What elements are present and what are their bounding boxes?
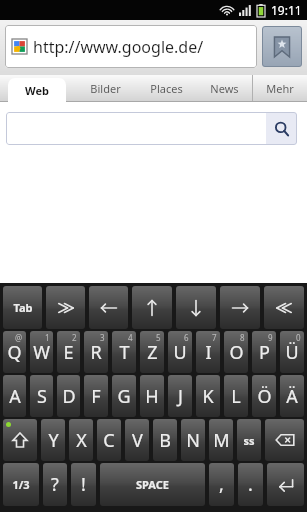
staticText: 1 xyxy=(45,332,50,343)
button[interactable]: F xyxy=(84,375,108,417)
button[interactable]: Delete xyxy=(265,419,304,461)
staticText: 9 xyxy=(268,332,273,343)
staticText: Web xyxy=(25,83,49,98)
button[interactable]: C xyxy=(97,419,121,461)
staticText: . xyxy=(248,472,253,497)
staticText: S xyxy=(37,384,47,409)
button[interactable]: . xyxy=(238,463,263,506)
staticText: 4 xyxy=(128,332,133,343)
button[interactable]: B xyxy=(153,419,177,461)
button[interactable]: K xyxy=(196,375,220,417)
button[interactable]: W xyxy=(30,331,53,373)
button[interactable]: News xyxy=(196,75,252,102)
staticText: M xyxy=(213,428,230,453)
button[interactable]: A xyxy=(3,375,26,417)
button[interactable]: ! xyxy=(71,463,96,506)
staticText: 7 xyxy=(212,332,217,343)
staticText: O xyxy=(229,340,244,365)
button[interactable]: Down xyxy=(176,286,216,329)
button[interactable]: V xyxy=(125,419,149,461)
staticText: I xyxy=(205,340,212,365)
button[interactable]: M xyxy=(209,419,233,461)
button[interactable]: Bilder xyxy=(74,75,136,102)
button[interactable]: L xyxy=(224,375,248,417)
staticText: 19:11 xyxy=(271,2,302,18)
button[interactable]: Shift xyxy=(3,419,37,461)
staticText: Ö xyxy=(257,384,272,409)
staticText: 1/3 xyxy=(12,477,30,492)
staticText: A xyxy=(9,384,21,409)
staticText: Y xyxy=(48,428,59,453)
button[interactable]: X xyxy=(69,419,93,461)
staticText: 0 xyxy=(296,332,301,343)
button[interactable]: G xyxy=(112,375,136,417)
button[interactable]: Ü xyxy=(280,331,304,373)
button[interactable]: ss xyxy=(237,419,261,461)
button[interactable]: Right xyxy=(220,286,260,329)
button[interactable]: ? xyxy=(43,463,67,506)
button[interactable]: R xyxy=(84,331,108,373)
staticText: Ü xyxy=(285,340,299,365)
staticText: C xyxy=(103,428,115,453)
staticText: 6 xyxy=(184,332,189,343)
button[interactable]: Search xyxy=(266,112,297,145)
button[interactable]: Page left xyxy=(46,286,85,329)
button[interactable]: T xyxy=(112,331,136,373)
staticText: Tab xyxy=(13,300,33,315)
button[interactable]: Enter xyxy=(267,463,304,506)
button[interactable]: N xyxy=(181,419,205,461)
staticText: K xyxy=(202,384,214,409)
staticText: ss xyxy=(243,433,255,448)
button[interactable] xyxy=(6,112,266,145)
staticText: V xyxy=(132,428,143,453)
button[interactable]: , xyxy=(209,463,234,506)
staticText: Q xyxy=(7,340,22,365)
staticText: Mehr xyxy=(266,81,294,96)
button[interactable]: Ä xyxy=(280,375,304,417)
button[interactable]: Tab xyxy=(3,286,42,329)
staticText: W xyxy=(33,340,50,365)
button[interactable]: 1/3 xyxy=(3,463,39,506)
button[interactable]: Page right xyxy=(264,286,304,329)
button[interactable]: S xyxy=(30,375,53,417)
button[interactable]: E xyxy=(57,331,80,373)
staticText: Ä xyxy=(286,384,298,409)
staticText: Places xyxy=(150,81,183,96)
button[interactable]: Z xyxy=(140,331,164,373)
staticText: F xyxy=(91,384,101,409)
button[interactable]: Q xyxy=(3,331,26,373)
button[interactable]: P xyxy=(252,331,276,373)
staticText: P xyxy=(259,340,270,365)
button[interactable]: Mehr xyxy=(253,75,307,102)
button[interactable]: Places xyxy=(136,75,196,102)
staticText: R xyxy=(90,340,102,365)
staticText: ! xyxy=(81,472,86,497)
button[interactable]: http://www.google.de/ xyxy=(5,25,257,68)
button[interactable]: I xyxy=(196,331,220,373)
staticText: Z xyxy=(147,340,158,365)
staticText: 5 xyxy=(156,332,161,343)
button[interactable]: H xyxy=(140,375,164,417)
button[interactable]: Left xyxy=(89,286,128,329)
staticText: H xyxy=(145,384,159,409)
staticText: 2 xyxy=(72,332,77,343)
button[interactable]: J xyxy=(168,375,192,417)
button[interactable]: O xyxy=(224,331,248,373)
staticText: D xyxy=(62,384,76,409)
button[interactable]: Web xyxy=(8,78,66,102)
button[interactable]: U xyxy=(168,331,192,373)
staticText: T xyxy=(119,340,130,365)
staticText: J xyxy=(178,384,183,409)
staticText: L xyxy=(231,384,241,409)
button[interactable]: Ö xyxy=(252,375,276,417)
staticText: @ xyxy=(15,332,23,343)
button[interactable]: D xyxy=(57,375,80,417)
button[interactable]: Y xyxy=(41,419,65,461)
button[interactable]: Bookmarks xyxy=(262,26,302,67)
staticText: ? xyxy=(51,472,59,497)
staticText: B xyxy=(159,428,171,453)
button[interactable]: SPACE xyxy=(100,463,205,506)
staticText: N xyxy=(186,428,200,453)
staticText: 3 xyxy=(100,332,105,343)
button[interactable]: Up xyxy=(132,286,172,329)
